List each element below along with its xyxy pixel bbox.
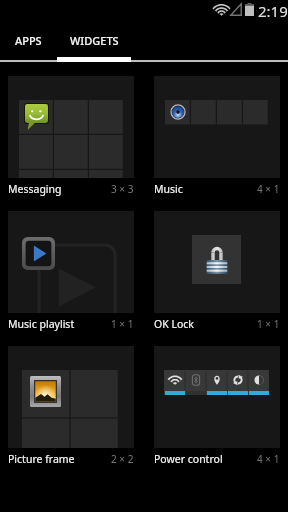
button[interactable]: Music [154, 76, 280, 200]
button[interactable]: Messaging [8, 76, 134, 200]
staticText: Picture frame [8, 452, 75, 466]
staticText: Music [154, 182, 183, 196]
button[interactable]: Power control [154, 346, 280, 470]
staticText: Power control [154, 452, 223, 466]
staticText: 2:19 [258, 1, 288, 21]
staticText: 4 × 1 [257, 182, 280, 196]
staticText: 1 × 1 [111, 317, 134, 331]
staticText: APPS [15, 33, 42, 48]
staticText: OK Lock [154, 317, 194, 331]
staticText: Messaging [8, 182, 62, 196]
button[interactable]: OK Lock [154, 211, 280, 335]
staticText: 4 × 1 [257, 452, 280, 466]
staticText: 2 × 2 [111, 452, 134, 466]
button[interactable]: WIDGETS [57, 24, 131, 57]
staticText: 1 × 1 [257, 317, 280, 331]
staticText: Music playlist [8, 317, 75, 331]
button[interactable]: APPS [0, 24, 57, 57]
button[interactable]: Picture frame [8, 346, 134, 470]
button[interactable]: Music playlist [8, 211, 134, 335]
staticText: WIDGETS [70, 33, 119, 48]
staticText: 3 × 3 [111, 182, 134, 196]
